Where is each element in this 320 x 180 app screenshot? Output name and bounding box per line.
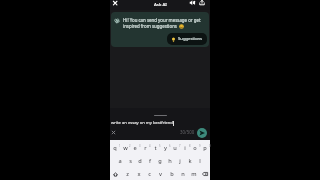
button[interactable]: q xyxy=(110,142,120,154)
staticText: 0 xyxy=(209,144,211,148)
staticText: 30/500 xyxy=(180,129,195,135)
button[interactable]: j xyxy=(175,155,185,167)
staticText: 3 xyxy=(139,144,141,148)
staticText: 4 xyxy=(149,144,151,148)
button[interactable]: Share xyxy=(198,0,206,8)
button[interactable]: l xyxy=(195,155,205,167)
button[interactable]: Clear text xyxy=(110,129,117,136)
button[interactable]: f xyxy=(145,155,155,167)
button[interactable]: z xyxy=(121,168,133,180)
button[interactable]: Sound xyxy=(187,0,195,8)
staticText: 2 xyxy=(129,144,131,148)
button[interactable]: s xyxy=(125,155,135,167)
staticText: Ask AI xyxy=(154,1,167,7)
button[interactable]: x xyxy=(133,168,144,180)
staticText: t xyxy=(154,144,157,152)
staticText: 8 xyxy=(189,144,191,148)
button[interactable]: v xyxy=(155,168,166,180)
staticText: b xyxy=(170,170,174,178)
staticText: a xyxy=(118,157,122,165)
staticText: m xyxy=(191,170,197,178)
staticText: c xyxy=(148,170,151,178)
staticText: y xyxy=(164,144,167,152)
button[interactable]: a xyxy=(115,155,125,167)
staticText: Hi! You can send your message or get xyxy=(123,17,201,23)
staticText: r xyxy=(144,144,147,152)
staticText: write an essay on my bestfriend xyxy=(111,120,173,126)
staticText: 7 xyxy=(179,144,181,148)
staticText: j xyxy=(179,157,181,165)
button[interactable]: o xyxy=(190,142,200,154)
button[interactable]: p xyxy=(200,142,210,154)
staticText: l xyxy=(199,157,201,165)
button[interactable]: Suggestions xyxy=(167,33,207,45)
staticText: x xyxy=(137,170,141,178)
button[interactable]: m xyxy=(188,168,199,180)
button[interactable]: k xyxy=(185,155,195,167)
button[interactable]: d xyxy=(135,155,145,167)
button[interactable]: t xyxy=(150,142,160,154)
staticText: z xyxy=(126,170,129,178)
staticText: g xyxy=(158,157,162,165)
staticText: q xyxy=(113,144,117,152)
staticText: 9 xyxy=(199,144,201,148)
button[interactable]: i xyxy=(180,142,190,154)
staticText: e xyxy=(133,144,137,152)
staticText: v xyxy=(159,170,162,178)
button[interactable]: Close xyxy=(111,0,119,8)
button[interactable]: Backspace xyxy=(199,168,210,180)
staticText: h xyxy=(168,157,172,165)
button[interactable]: n xyxy=(177,168,188,180)
staticText: f xyxy=(149,157,151,165)
staticText: inspired from suggestions xyxy=(123,23,179,29)
staticText: 1 xyxy=(119,144,121,148)
button[interactable]: e xyxy=(130,142,140,154)
button[interactable]: u xyxy=(170,142,180,154)
staticText: i xyxy=(184,144,186,152)
button[interactable]: h xyxy=(165,155,175,167)
button[interactable]: r xyxy=(140,142,150,154)
button[interactable]: y xyxy=(160,142,170,154)
button[interactable]: w xyxy=(120,142,130,154)
button[interactable]: g xyxy=(155,155,165,167)
button[interactable]: c xyxy=(144,168,155,180)
button[interactable]: Send xyxy=(197,128,207,138)
staticText: u xyxy=(173,144,177,152)
button[interactable]: b xyxy=(166,168,177,180)
staticText: o xyxy=(193,144,197,152)
staticText: s xyxy=(129,157,132,165)
staticText: k xyxy=(188,157,192,165)
staticText: 6 xyxy=(169,144,171,148)
staticText: p xyxy=(203,144,207,152)
staticText: n xyxy=(181,170,185,178)
staticText: 5 xyxy=(159,144,161,148)
button[interactable]: Shift xyxy=(110,168,121,180)
staticText: d xyxy=(138,157,142,165)
staticText: Suggestions xyxy=(178,36,203,42)
staticText: w xyxy=(123,144,128,152)
